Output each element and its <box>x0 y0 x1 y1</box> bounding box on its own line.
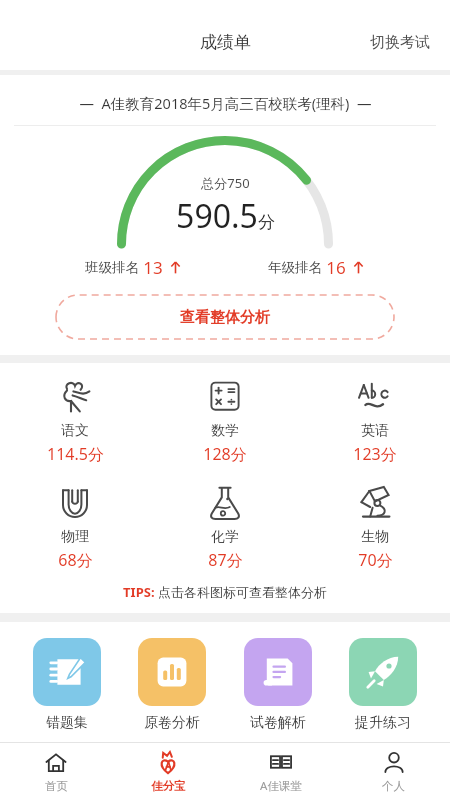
staticText: 数学 <box>211 422 239 440</box>
button[interactable]: 生物 <box>300 481 450 573</box>
staticText: 生物 <box>361 528 389 546</box>
staticText: 87分 <box>208 549 243 571</box>
other: 物理 <box>55 483 95 523</box>
staticText: 成绩单 <box>200 32 251 53</box>
staticText: 年级排名 <box>268 259 322 276</box>
staticText: 查看整体分析 <box>180 308 270 327</box>
staticText: 68分 <box>58 549 93 571</box>
button[interactable]: 语文 <box>0 375 150 467</box>
button[interactable]: 提升练习 <box>345 638 421 732</box>
staticText: 化学 <box>211 528 239 546</box>
staticText: 班级排名 <box>85 259 139 276</box>
button[interactable]: 物理 <box>0 481 150 573</box>
button[interactable]: 查看整体分析 <box>56 295 394 339</box>
button[interactable]: 切换考试 <box>356 27 444 58</box>
other: 化学 <box>205 483 245 523</box>
button[interactable]: 原卷分析 <box>134 638 210 732</box>
staticText: 试卷解析 <box>250 714 306 732</box>
button[interactable]: A佳课堂 <box>224 743 337 800</box>
button[interactable]: 英语 <box>300 375 450 467</box>
button[interactable]: 个人 <box>337 743 450 800</box>
other: 生物 <box>355 483 395 523</box>
button[interactable]: 数学 <box>150 375 300 467</box>
other: 数学 <box>205 377 245 417</box>
staticText: 128分 <box>203 443 247 465</box>
staticText: 123分 <box>353 443 397 465</box>
button[interactable]: 错题集 <box>29 638 105 732</box>
button[interactable]: 化学 <box>150 481 300 573</box>
staticText: 原卷分析 <box>144 714 200 732</box>
staticText: 114.5分 <box>47 443 104 465</box>
staticText: 语文 <box>61 422 89 440</box>
staticText: 首页 <box>45 779 68 793</box>
staticText: 70分 <box>358 549 393 571</box>
other: 英语 <box>355 377 395 417</box>
button[interactable]: 佳分宝 <box>112 743 224 800</box>
other: 语文 <box>55 377 95 417</box>
staticText: 英语 <box>361 422 389 440</box>
staticText: 16 <box>326 256 346 279</box>
staticText: 切换考试 <box>370 33 430 52</box>
staticText: 590.5分 <box>176 194 275 238</box>
staticText: 13 <box>143 256 163 279</box>
staticText: 总分750 <box>201 174 250 192</box>
staticText: 佳分宝 <box>151 779 186 793</box>
staticText: A佳课堂 <box>260 778 302 794</box>
staticText: 个人 <box>382 779 405 793</box>
staticText: — A佳教育2018年5月高三百校联考(理科) — <box>79 93 372 113</box>
staticText: 物理 <box>61 528 89 546</box>
button[interactable]: 试卷解析 <box>240 638 316 732</box>
staticText: TIPS: 点击各科图标可查看整体分析 <box>0 583 450 601</box>
staticText: 错题集 <box>46 714 88 732</box>
button[interactable]: 首页 <box>0 743 112 800</box>
staticText: 提升练习 <box>355 714 411 732</box>
